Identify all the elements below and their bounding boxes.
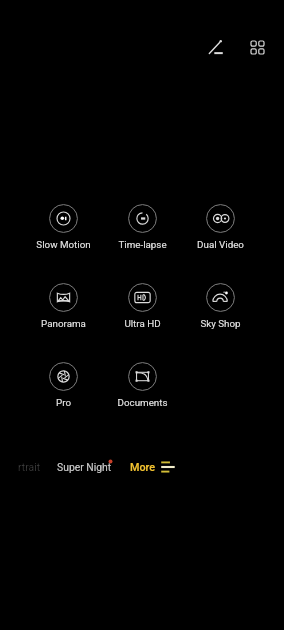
button[interactable]: Time-lapse (104, 202, 180, 258)
button[interactable]: Camera modes grid (238, 28, 276, 66)
staticText: Time-lapse (118, 239, 167, 250)
button[interactable]: Slow Motion (25, 202, 101, 258)
button[interactable]: More (130, 456, 178, 478)
button[interactable]: Pro (25, 360, 101, 416)
staticText: Pro (56, 397, 71, 408)
button[interactable]: Ultra HD (104, 281, 180, 337)
staticText: rtrait (18, 461, 41, 473)
button[interactable]: Documents (104, 360, 180, 416)
button[interactable]: Sky Shop (182, 281, 258, 337)
staticText: Super Night (57, 461, 112, 473)
staticText: Slow Motion (36, 239, 91, 250)
button[interactable]: Panorama (25, 281, 101, 337)
button[interactable]: Dual Video (182, 202, 258, 258)
staticText: Sky Shop (200, 318, 241, 329)
button[interactable]: rtrait (0, 456, 41, 478)
button[interactable]: Tilt level (196, 28, 234, 66)
staticText: More (130, 461, 156, 474)
button[interactable]: Super Night (54, 456, 114, 478)
staticText: Ultra HD (124, 318, 161, 329)
staticText: Documents (117, 397, 168, 408)
staticText: Panorama (41, 318, 86, 329)
staticText: Dual Video (197, 239, 244, 250)
